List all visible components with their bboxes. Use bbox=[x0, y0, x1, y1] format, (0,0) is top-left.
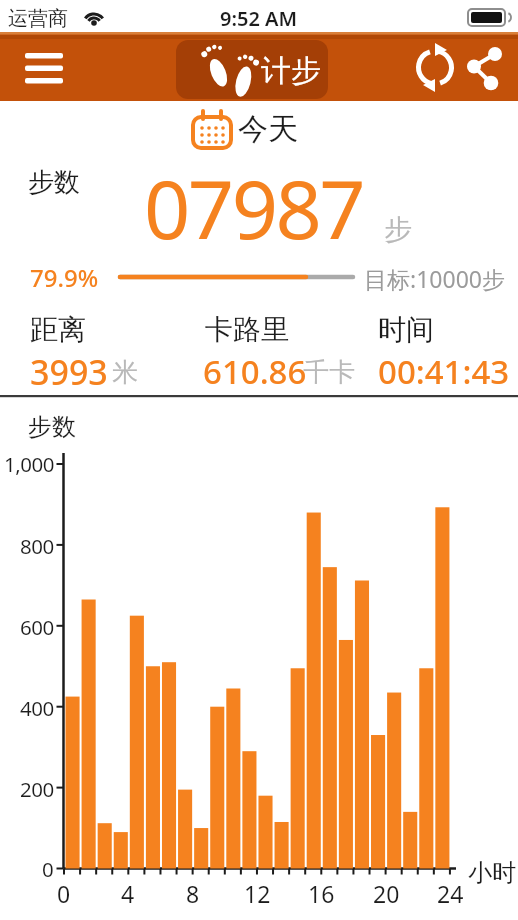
staticText: 12 bbox=[244, 878, 271, 909]
staticText: 千卡 bbox=[303, 356, 355, 389]
staticText: 20 bbox=[373, 878, 400, 909]
staticText: 步 bbox=[384, 212, 412, 247]
staticText: 8 bbox=[186, 878, 200, 909]
button[interactable] bbox=[25, 48, 65, 88]
staticText: 1,000 bbox=[4, 450, 54, 478]
staticText: 卡路里 bbox=[205, 312, 289, 347]
staticText: 小时 bbox=[468, 858, 516, 888]
staticText: 0 bbox=[57, 878, 71, 909]
button[interactable]: 今天 bbox=[188, 108, 298, 150]
button[interactable] bbox=[408, 46, 456, 94]
staticText: 计步 bbox=[261, 52, 321, 90]
staticText: 07987 bbox=[144, 152, 364, 262]
staticText: 时间 bbox=[378, 312, 434, 347]
staticText: 步数 bbox=[28, 412, 76, 442]
staticText: 00:41:43 bbox=[378, 349, 510, 394]
button[interactable] bbox=[462, 46, 510, 94]
staticText: 24 bbox=[437, 878, 464, 909]
staticText: 目标:10000步 bbox=[364, 263, 505, 294]
staticText: 距离 bbox=[30, 312, 86, 347]
staticText: 步数 bbox=[28, 166, 80, 199]
staticText: 米 bbox=[112, 356, 138, 389]
staticText: 9:52 AM bbox=[220, 5, 298, 32]
staticText: 今天 bbox=[238, 110, 298, 148]
staticText: 3993 bbox=[30, 349, 108, 395]
staticText: 600 bbox=[20, 613, 54, 641]
staticText: 16 bbox=[308, 878, 335, 909]
staticText: 0 bbox=[42, 855, 54, 883]
staticText: 4 bbox=[121, 878, 135, 909]
staticText: 200 bbox=[20, 775, 54, 803]
staticText: 400 bbox=[20, 694, 54, 722]
staticText: 800 bbox=[20, 532, 54, 560]
button[interactable] bbox=[176, 40, 328, 99]
staticText: 610.86 bbox=[203, 349, 307, 394]
staticText: 79.9% bbox=[30, 261, 99, 294]
staticText: 运营商 bbox=[8, 6, 68, 31]
